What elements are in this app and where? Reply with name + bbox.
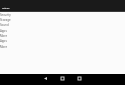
button[interactable]: Recent apps: [75, 74, 84, 83]
button[interactable]: Apps: [0, 38, 13, 44]
button[interactable]: Settings: [0, 0, 125, 12]
button[interactable]: More: [0, 33, 13, 38]
staticText: More: [0, 45, 8, 49]
button[interactable]: More: [0, 44, 13, 49]
staticText: Settings: [2, 7, 10, 9]
button[interactable]: Security: [0, 12, 13, 17]
button[interactable]: Back: [41, 74, 50, 83]
button[interactable]: Home: [58, 74, 67, 83]
button[interactable]: Sound: [0, 22, 13, 28]
staticText: Sound: [0, 23, 9, 27]
staticText: Storage: [0, 18, 11, 22]
staticText: Security: [0, 13, 11, 17]
button[interactable]: Apps: [0, 28, 13, 33]
staticText: More: [0, 34, 8, 38]
staticText: Apps: [0, 39, 7, 43]
button[interactable]: Storage: [0, 17, 13, 22]
staticText: Apps: [0, 29, 7, 33]
